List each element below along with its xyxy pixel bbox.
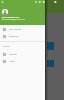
staticText: Others bbox=[3, 45, 11, 48]
staticText: Trip Planner bbox=[9, 28, 22, 31]
staticText: john.wilson@gmail.com bbox=[2, 18, 25, 21]
staticText: About bbox=[9, 60, 16, 63]
button[interactable]: Trip Planner bbox=[0, 26, 45, 33]
button[interactable]: About bbox=[0, 58, 45, 65]
staticText: John Wilson UK bbox=[2, 15, 20, 18]
button[interactable]: Refund bbox=[0, 51, 45, 58]
staticText: Refund bbox=[9, 53, 17, 56]
staticText: Bookings bbox=[9, 35, 19, 38]
button[interactable]: Bookings bbox=[0, 33, 45, 40]
